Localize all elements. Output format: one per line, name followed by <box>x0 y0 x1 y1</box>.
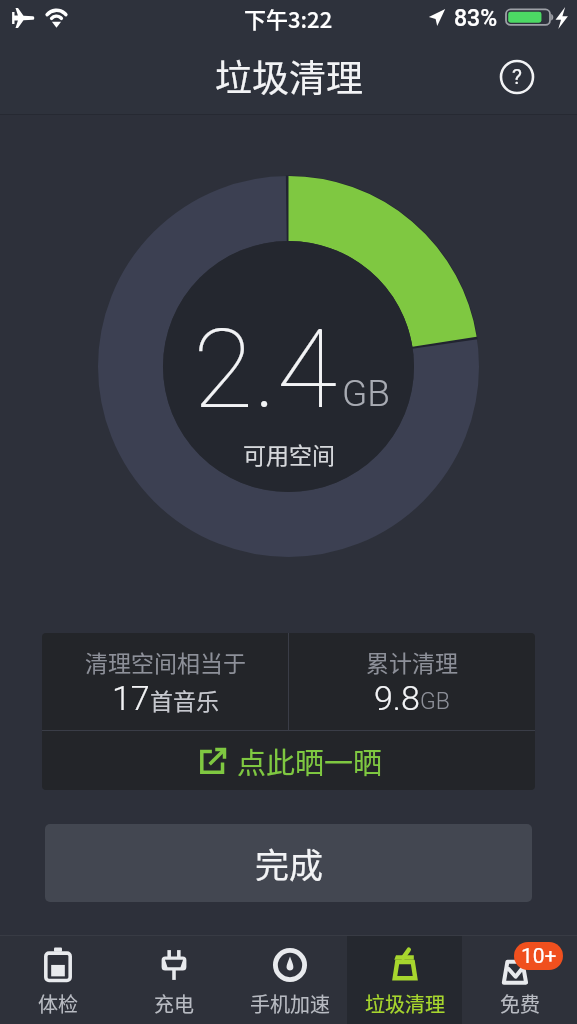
staticText: 累计清理 <box>366 645 458 678</box>
staticText: 10+ <box>521 944 557 969</box>
button[interactable]: 垃圾清理 <box>347 936 462 1024</box>
staticText: 首音乐 <box>150 683 219 716</box>
staticText: 可用空间 <box>243 437 335 470</box>
staticText: 免费 <box>500 989 540 1018</box>
staticText: 体检 <box>38 989 78 1018</box>
staticText: 垃圾清理 <box>365 989 445 1018</box>
staticText: GB <box>420 688 450 715</box>
button[interactable]: 完成 <box>45 824 532 902</box>
staticText: 手机加速 <box>250 989 330 1018</box>
staticText: 9.8 <box>374 678 420 718</box>
staticText: 83% <box>454 5 498 32</box>
staticText: 充电 <box>154 989 194 1018</box>
button[interactable]: 10+ <box>462 936 577 1024</box>
button[interactable]: 充电 <box>116 936 232 1024</box>
button[interactable]: 点此晒一晒 <box>42 731 535 790</box>
staticText: GB <box>342 372 390 415</box>
staticText: 完成 <box>255 839 323 888</box>
staticText: 清理空间相当于 <box>85 645 246 678</box>
staticText: 2.4 <box>193 305 337 434</box>
staticText: ? <box>512 65 522 90</box>
staticText: 17 <box>112 678 150 718</box>
button[interactable]: 手机加速 <box>232 936 347 1024</box>
button[interactable]: Help <box>497 57 537 97</box>
staticText: 垃圾清理 <box>215 49 363 103</box>
staticText: 点此晒一晒 <box>237 740 383 782</box>
button[interactable]: 体检 <box>0 936 116 1024</box>
staticText: 下午3:22 <box>244 2 333 34</box>
